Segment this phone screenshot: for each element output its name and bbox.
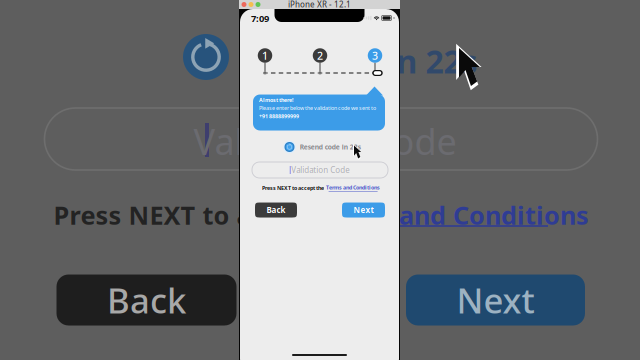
staticText: 2 xyxy=(317,48,323,63)
staticText: Almost there! xyxy=(259,96,294,103)
staticText: Press NEXT to accept the xyxy=(53,198,368,232)
button[interactable]: Resend code in 22s xyxy=(280,139,364,155)
staticText: Resend code in 22s xyxy=(300,143,361,151)
staticText: in 22s xyxy=(386,40,477,82)
staticText: iPhone XR - 12.1 xyxy=(288,0,351,10)
staticText: Validation Code xyxy=(193,117,456,165)
staticText: 7:09 xyxy=(251,12,269,25)
staticText: +91 8888899999 xyxy=(259,112,299,120)
staticText: Terms and Conditions xyxy=(315,198,589,232)
staticText: Validation Code xyxy=(291,165,350,175)
button[interactable]: Back xyxy=(255,202,297,217)
button[interactable]: Terms and Conditions xyxy=(326,184,380,192)
button[interactable]: Next xyxy=(342,202,385,217)
staticText: Back xyxy=(266,205,285,215)
button[interactable]: Validation Code xyxy=(252,162,388,178)
staticText: Next xyxy=(353,205,373,215)
staticText: 3 xyxy=(372,48,378,63)
staticText: Please enter below the validation code w… xyxy=(259,104,376,112)
staticText: Back xyxy=(107,277,186,323)
staticText: Next xyxy=(456,277,534,323)
staticText: Press NEXT to accept the xyxy=(262,184,324,192)
staticText: 1 xyxy=(262,48,268,63)
staticText: Terms and Conditions xyxy=(326,184,380,191)
